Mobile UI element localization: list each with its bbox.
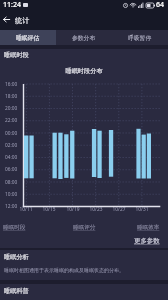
staticText: 00:00 xyxy=(5,130,18,137)
staticText: 参数分布 xyxy=(72,34,96,41)
staticText: 08:00 xyxy=(5,179,18,186)
staticText: 睡眠评估 xyxy=(16,34,40,41)
staticText: 10/31 xyxy=(132,206,152,213)
staticText: 10:00 xyxy=(5,191,18,198)
staticText: 睡眠评分 xyxy=(73,224,96,231)
button[interactable]: 睡眠时段 xyxy=(3,224,26,231)
staticText: 睡眠时段分布 xyxy=(0,67,168,75)
staticText: 睡眠时段 xyxy=(4,51,29,59)
staticText: 06:00 xyxy=(5,166,18,173)
staticText: 10/15 xyxy=(39,206,59,213)
staticText: 睡眠时段 xyxy=(3,224,26,231)
staticText: 11:24 xyxy=(3,0,21,10)
staticText: 02:00 xyxy=(5,142,18,149)
button[interactable]: 更多参数 xyxy=(134,237,160,245)
staticText: 10/19 xyxy=(63,206,83,213)
staticText: 10/23 xyxy=(86,206,106,213)
staticText: 64 xyxy=(156,0,165,10)
staticText: 04:00 xyxy=(5,154,18,161)
staticText: 呼吸暂停 xyxy=(128,34,152,41)
staticText: 10/27 xyxy=(109,206,129,213)
staticText: 22:00 xyxy=(5,117,18,124)
staticText: 20:00 xyxy=(5,105,18,112)
button[interactable]: Back xyxy=(0,13,12,25)
staticText: 统计 xyxy=(15,16,30,25)
button[interactable]: 睡眠评分 xyxy=(73,224,96,231)
button[interactable]: 睡眠效率 xyxy=(137,224,160,231)
staticText: 12:00 xyxy=(5,203,18,210)
button[interactable]: 呼吸暂停 xyxy=(112,30,168,45)
staticText: 更多参数 xyxy=(134,237,160,245)
staticText: 睡眠效率 xyxy=(137,224,160,231)
button[interactable]: 参数分布 xyxy=(56,30,112,45)
staticText: 睡眠分析 xyxy=(4,253,29,261)
button[interactable]: 睡眠评估 xyxy=(0,30,56,45)
staticText: 睡眠科普 xyxy=(4,287,29,295)
staticText: 16:00 xyxy=(5,81,18,88)
staticText: 睡眠时相图通用于表示睡眠的构成及睡眠状态的分布。 xyxy=(4,267,124,273)
staticText: 18:00 xyxy=(5,93,18,100)
staticText: 10/11 xyxy=(16,206,36,213)
